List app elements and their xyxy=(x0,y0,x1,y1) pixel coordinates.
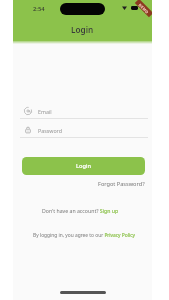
staticText: 2:54 xyxy=(33,5,45,13)
other: Battery xyxy=(131,6,138,10)
other: Password xyxy=(24,126,32,134)
button[interactable]: By logging in, you agree to our Privacy … xyxy=(33,232,135,239)
other: Email xyxy=(24,107,32,115)
staticText: Password xyxy=(38,127,62,134)
button[interactable]: Login xyxy=(22,157,145,175)
other: Wi-Fi xyxy=(122,6,127,10)
staticText: Forgot Password? xyxy=(98,180,145,188)
staticText: Login xyxy=(76,162,91,170)
staticText: Email xyxy=(38,108,52,115)
staticText: DEMO xyxy=(138,2,150,15)
button[interactable]: Password xyxy=(20,123,148,138)
staticText: Login xyxy=(71,24,94,35)
button[interactable]: Forgot Password? xyxy=(96,179,148,189)
button[interactable]: Email xyxy=(20,104,148,119)
button[interactable]: Don't have an account? Sign up xyxy=(42,207,119,214)
